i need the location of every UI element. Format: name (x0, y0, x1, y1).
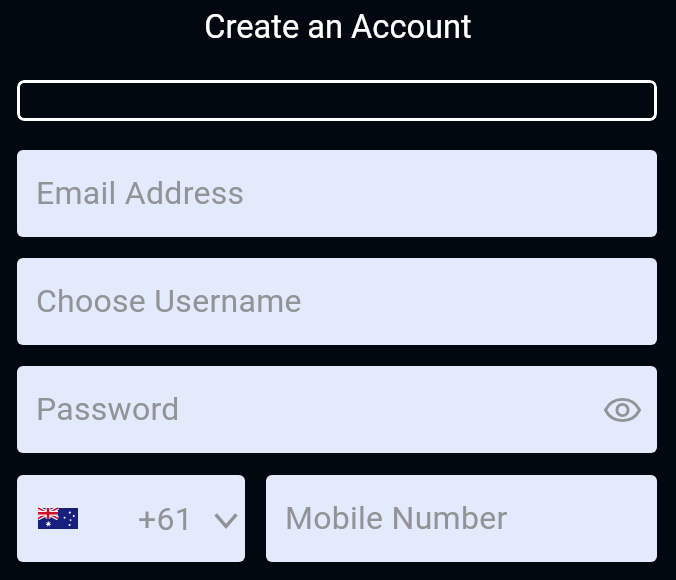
staticText: +61 (138, 500, 193, 538)
button[interactable]: Email Address (17, 150, 657, 237)
button[interactable]: Show password (598, 386, 646, 434)
staticText: Email Address (36, 174, 245, 212)
staticText: Choose Username (36, 282, 302, 320)
button[interactable]: Choose Username (17, 258, 657, 345)
staticText: Password (36, 390, 180, 428)
button[interactable]: Full name (17, 80, 657, 121)
button[interactable]: Mobile Number (266, 475, 657, 562)
button[interactable]: Select country calling code (17, 475, 245, 562)
staticText: Mobile Number (285, 499, 508, 537)
staticText: Create an Account (0, 8, 676, 46)
button[interactable]: Password (17, 366, 657, 453)
